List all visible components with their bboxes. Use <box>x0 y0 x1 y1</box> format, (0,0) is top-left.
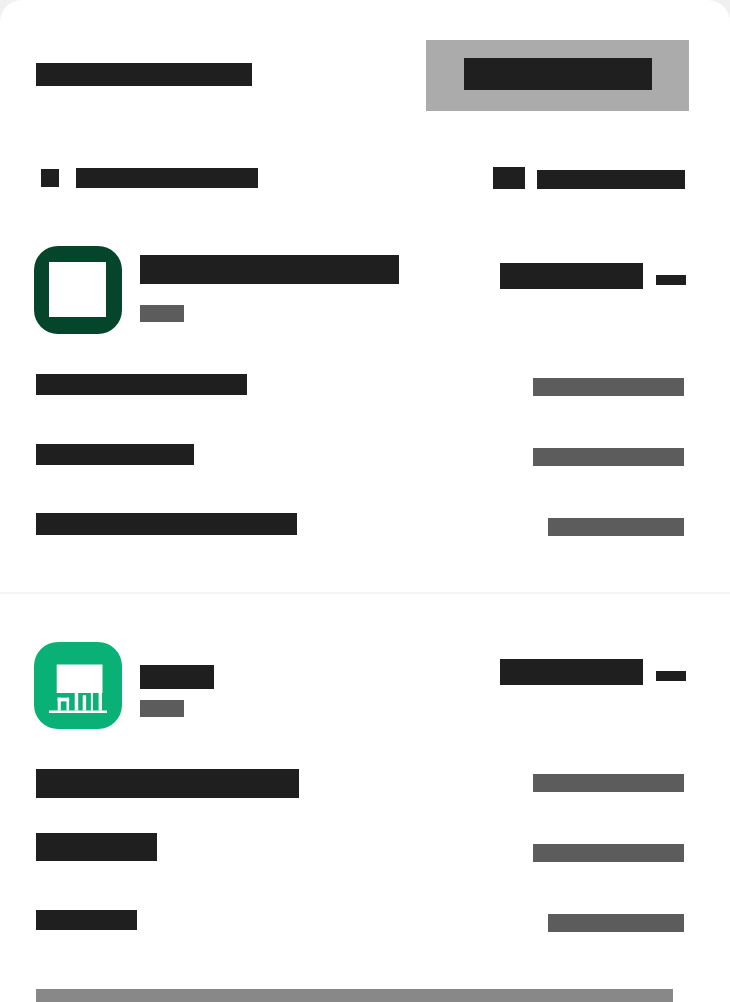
button[interactable]: Report logo <box>34 642 122 729</box>
button[interactable]: Account logo <box>34 246 122 334</box>
button[interactable] <box>0 420 730 488</box>
button[interactable] <box>0 745 730 815</box>
button[interactable] <box>426 40 689 111</box>
button[interactable] <box>41 167 258 189</box>
button[interactable] <box>493 167 685 189</box>
button[interactable] <box>0 887 730 957</box>
button[interactable] <box>0 815 730 887</box>
button[interactable] <box>0 490 730 560</box>
button[interactable] <box>0 350 730 418</box>
